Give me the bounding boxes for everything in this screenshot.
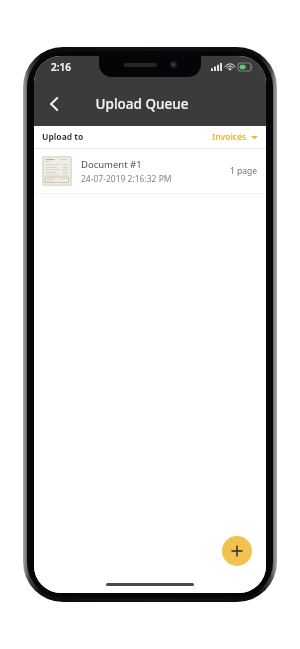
- staticText: Upload Queue: [66, 95, 218, 113]
- button[interactable]: Document #1: [34, 149, 266, 193]
- button[interactable]: Back: [34, 81, 74, 126]
- staticText: Invoices: [212, 131, 247, 143]
- staticText: 2:16: [51, 60, 71, 74]
- staticText: Document #1: [81, 158, 142, 171]
- button[interactable]: Upload to: [34, 126, 266, 148]
- staticText: Upload to: [42, 131, 84, 143]
- staticText: 1 page: [230, 165, 258, 177]
- staticText: 24-07-2019 2:16:32 PM: [81, 173, 172, 185]
- button[interactable]: Add document: [222, 536, 252, 566]
